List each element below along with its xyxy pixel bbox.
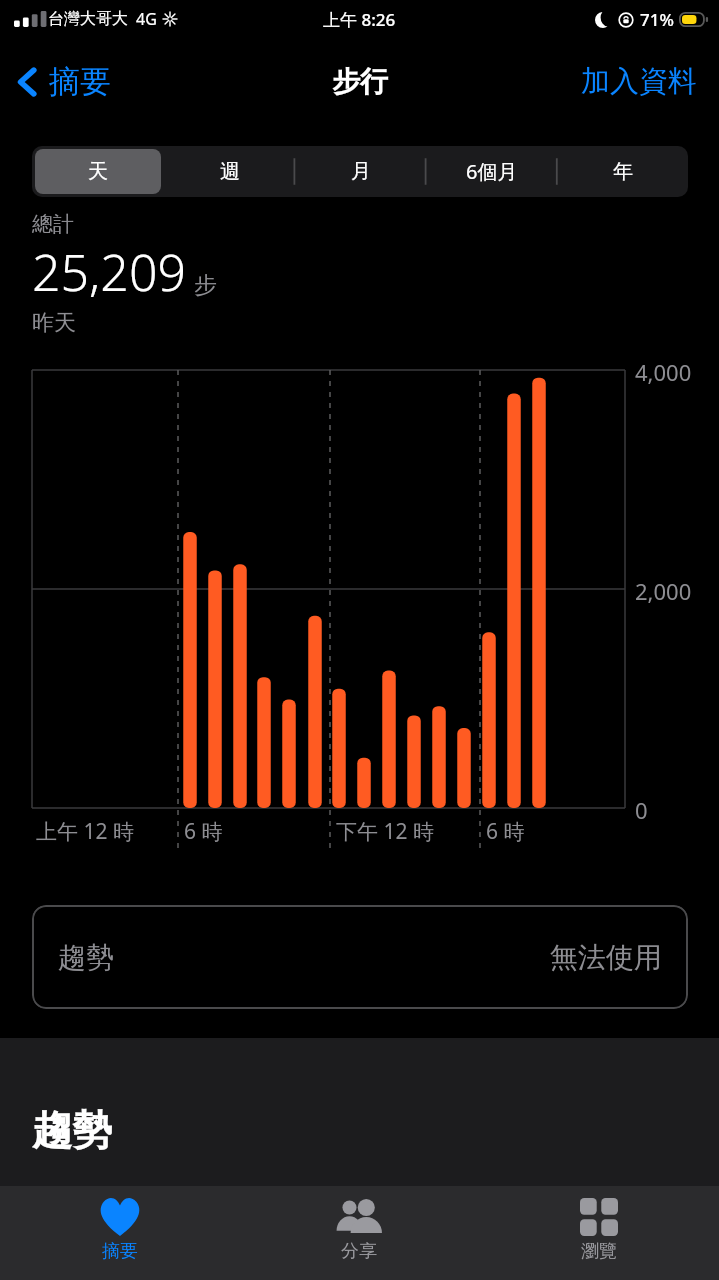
button[interactable]: 加入資料 [577, 55, 701, 108]
staticText: 6 時 [184, 817, 223, 846]
staticText: 步 [194, 271, 217, 300]
button[interactable]: 摘要 [0, 1186, 239, 1280]
button[interactable]: 月 [298, 149, 423, 194]
staticText: 下午 12 時 [336, 817, 434, 846]
staticText: 總計 [32, 211, 74, 237]
staticText: 2,000 [635, 576, 692, 606]
button[interactable]: 週 [167, 149, 292, 194]
staticText: 趨勢 [32, 1105, 112, 1155]
button[interactable]: 趨勢 [32, 905, 688, 1009]
staticText: 上午 8:26 [323, 8, 396, 31]
staticText: 4G [136, 8, 157, 30]
staticText: 25,209 [32, 238, 186, 306]
staticText: 週 [220, 159, 240, 184]
staticText: 4,000 [635, 357, 692, 387]
staticText: 年 [613, 159, 633, 184]
staticText: 天 [88, 159, 108, 184]
staticText: 0 [635, 795, 648, 825]
staticText: 趨勢 [58, 940, 114, 975]
staticText: 6 時 [486, 817, 525, 846]
staticText: 摘要 [102, 1240, 138, 1263]
staticText: 上午 12 時 [36, 817, 134, 846]
other: 摘要 [98, 1198, 142, 1236]
other: 分享 [331, 1198, 387, 1236]
staticText: 無法使用 [550, 940, 662, 975]
button[interactable]: 年 [560, 149, 685, 194]
staticText: 月 [351, 159, 371, 184]
staticText: 加入資料 [581, 63, 697, 100]
staticText: 分享 [341, 1240, 377, 1263]
staticText: 台灣大哥大 [48, 9, 128, 29]
button[interactable]: 天 [35, 149, 161, 194]
staticText: 摘要 [49, 62, 111, 101]
staticText: 昨天 [32, 309, 76, 337]
button[interactable]: 摘要 [13, 54, 115, 109]
staticText: 6個月 [466, 158, 518, 185]
button[interactable]: 6個月 [429, 149, 554, 194]
staticText: 71% [640, 8, 674, 31]
button[interactable]: 分享 [239, 1186, 479, 1280]
staticText: 瀏覽 [581, 1240, 617, 1263]
button[interactable]: 瀏覽 [479, 1186, 719, 1280]
staticText: 步行 [332, 64, 388, 99]
other: 瀏覽 [580, 1198, 618, 1236]
